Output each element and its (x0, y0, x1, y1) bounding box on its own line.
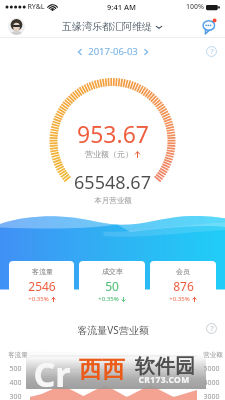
staticText: 300 (9, 392, 22, 400)
button[interactable]: Help (206, 46, 217, 57)
staticText: 客流量VS营业额 (77, 323, 149, 337)
button[interactable]: 会员 (150, 261, 216, 309)
staticText: ? (210, 324, 214, 334)
staticText: 400 (9, 378, 22, 388)
staticText: 客流量 (32, 267, 53, 276)
button[interactable]: Help (206, 323, 217, 334)
button[interactable]: 五缘湾乐都汇阿维缇 (62, 20, 163, 33)
staticText: 4000 (203, 378, 220, 388)
button[interactable]: Profile (8, 18, 25, 35)
staticText: 本月营业额 (94, 196, 132, 205)
staticText: +0.35% (28, 295, 49, 303)
staticText: 西西 (79, 355, 125, 384)
staticText: 2546 (28, 278, 56, 294)
staticText: 成交率 (102, 267, 123, 276)
button[interactable]: 客流量 (9, 261, 74, 309)
staticText: 5000 (203, 364, 220, 374)
staticText: 3000 (203, 392, 220, 400)
button[interactable]: 成交率 (79, 261, 145, 309)
staticText: 9:41 AM (107, 2, 136, 12)
staticText: ? (210, 47, 214, 57)
staticText: 953.67 (77, 118, 149, 149)
staticText: 软件园 (135, 354, 195, 379)
staticText: 客流量 (8, 351, 28, 359)
staticText: 876 (173, 278, 194, 294)
button[interactable]: Previous day (76, 48, 84, 56)
staticText: 五缘湾乐都汇阿维缇 (62, 20, 152, 33)
staticText: 营业额（元） (85, 149, 133, 159)
staticText: 2017-06-03 (88, 45, 138, 58)
staticText: +0.35% (169, 295, 190, 303)
staticText: CR173.COM (138, 374, 190, 386)
staticText: +0.35% (98, 295, 119, 303)
staticText: 50 (105, 278, 119, 294)
staticText: RY&L (27, 2, 45, 12)
button[interactable]: Next day (142, 48, 150, 56)
staticText: Cr (33, 351, 71, 397)
button[interactable]: Messages (201, 18, 218, 35)
staticText: 会员 (176, 267, 190, 276)
staticText: 100% (186, 2, 204, 12)
staticText: 65548.67 (74, 170, 151, 195)
staticText: 500 (9, 364, 22, 374)
staticText: 营业额 (203, 351, 223, 359)
